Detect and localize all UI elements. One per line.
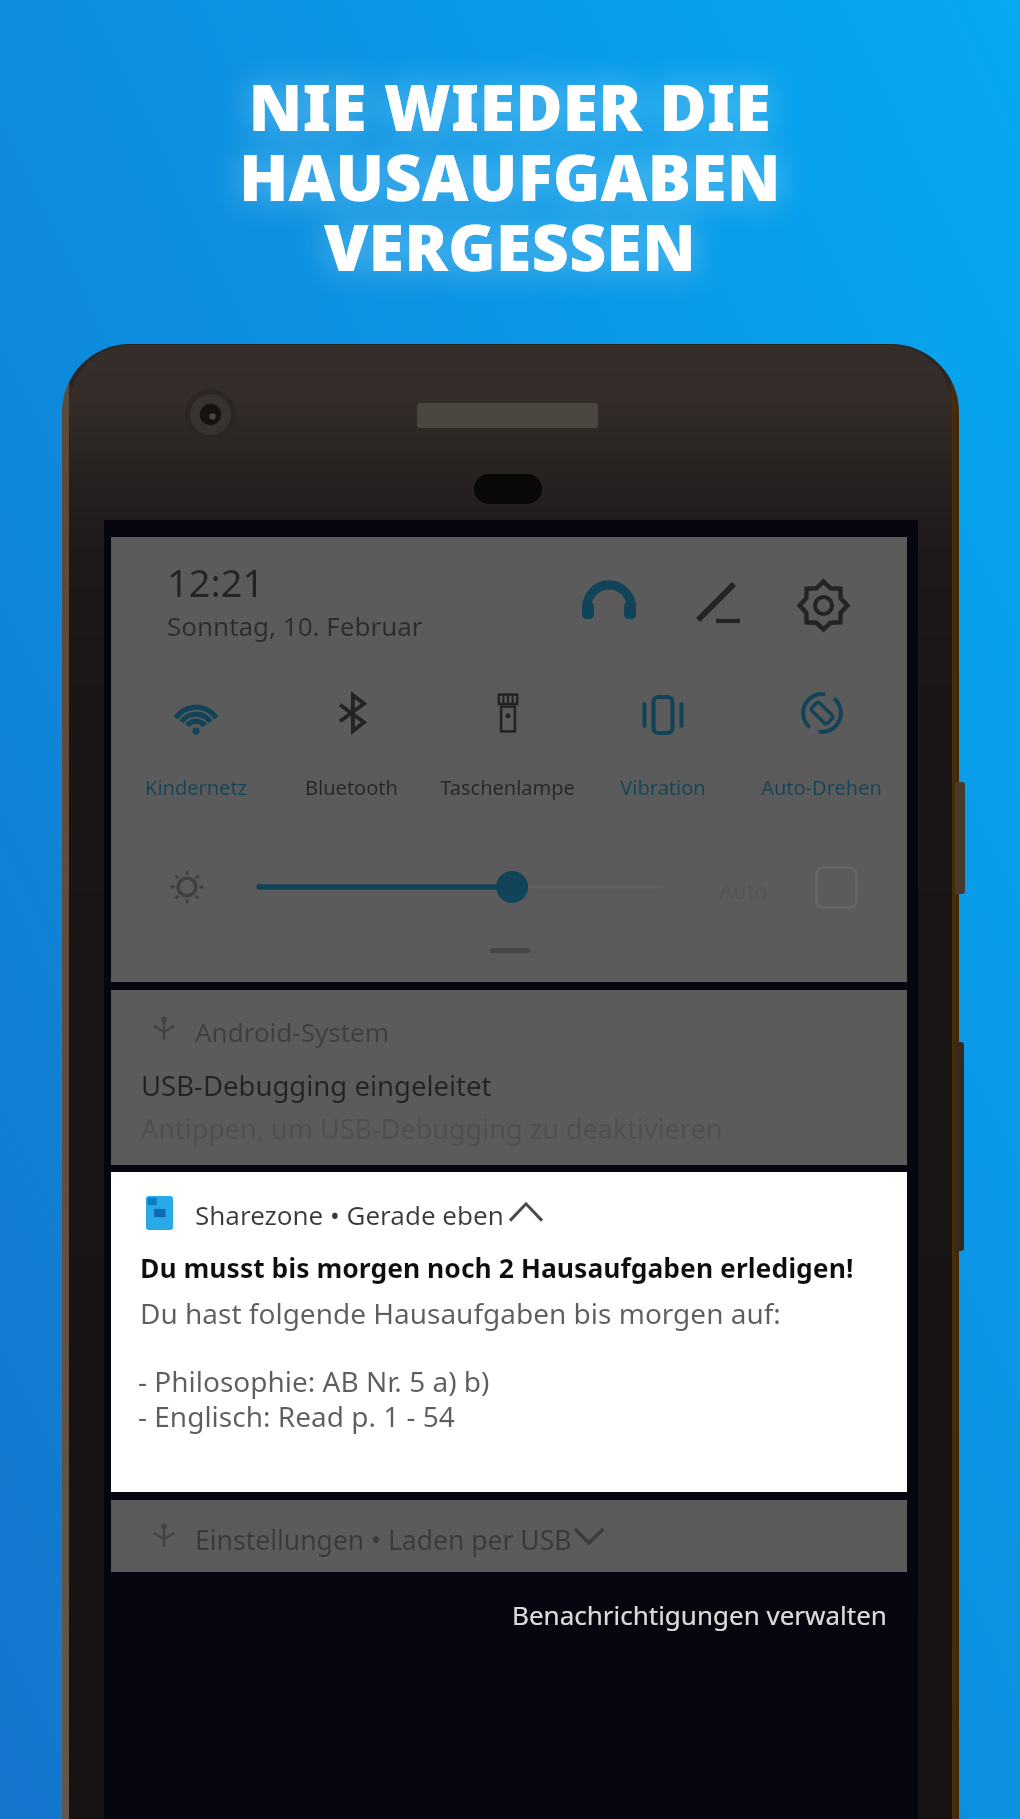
staticText: Bluetooth bbox=[305, 774, 398, 801]
staticText: Du musst bis morgen noch 2 Hausaufgaben … bbox=[140, 1250, 854, 1286]
staticText: Du hast folgende Hausaufgaben bis morgen… bbox=[140, 1294, 781, 1332]
staticText: Benachrichtigungen verwalten bbox=[512, 1597, 887, 1632]
staticText: Kindernetz bbox=[145, 774, 247, 801]
button[interactable] bbox=[111, 990, 907, 1165]
staticText: USB-Debugging eingeleitet bbox=[141, 1067, 492, 1104]
staticText: 12:21 bbox=[167, 556, 265, 608]
button[interactable]: Settings bbox=[797, 579, 850, 632]
button[interactable]: Auto brightness toggle bbox=[815, 866, 858, 909]
staticText: Sharezone • Gerade eben bbox=[195, 1197, 504, 1232]
button[interactable] bbox=[111, 1500, 907, 1572]
button[interactable]: Volume button bbox=[955, 1042, 964, 1251]
button[interactable]: Edit bbox=[692, 578, 742, 628]
button[interactable]: Auto-Drehen bbox=[743, 685, 899, 803]
staticText: Vibration bbox=[620, 774, 706, 801]
button[interactable]: Vibration bbox=[585, 685, 741, 803]
button[interactable]: Power button bbox=[955, 782, 965, 894]
button[interactable]: Taschenlampe bbox=[429, 685, 585, 803]
staticText: Taschenlampe bbox=[440, 774, 575, 801]
staticText: - Philosophie: AB Nr. 5 a) b) bbox=[138, 1362, 490, 1400]
staticText: Einstellungen • Laden per USB bbox=[195, 1522, 572, 1558]
staticText: Auto-Drehen bbox=[761, 774, 882, 801]
button[interactable]: Collapse notification bbox=[509, 1200, 543, 1224]
button[interactable]: Headphones bbox=[582, 572, 636, 626]
button[interactable]: Benachrichtigungen verwalten bbox=[512, 1597, 887, 1632]
staticText: Antippen, um USB-Debugging zu deaktivier… bbox=[141, 1110, 723, 1147]
button[interactable]: Kindernetz bbox=[118, 685, 274, 803]
button[interactable] bbox=[111, 1172, 907, 1492]
staticText: - Englisch: Read p. 1 - 54 bbox=[138, 1397, 455, 1435]
button[interactable]: Bluetooth bbox=[273, 685, 429, 803]
staticText: Android-System bbox=[195, 1014, 390, 1049]
staticText: NIE WIEDER DIE HAUSAUFGABEN VERGESSEN bbox=[239, 63, 781, 290]
staticText: Sonntag, 10. Februar bbox=[167, 608, 423, 643]
